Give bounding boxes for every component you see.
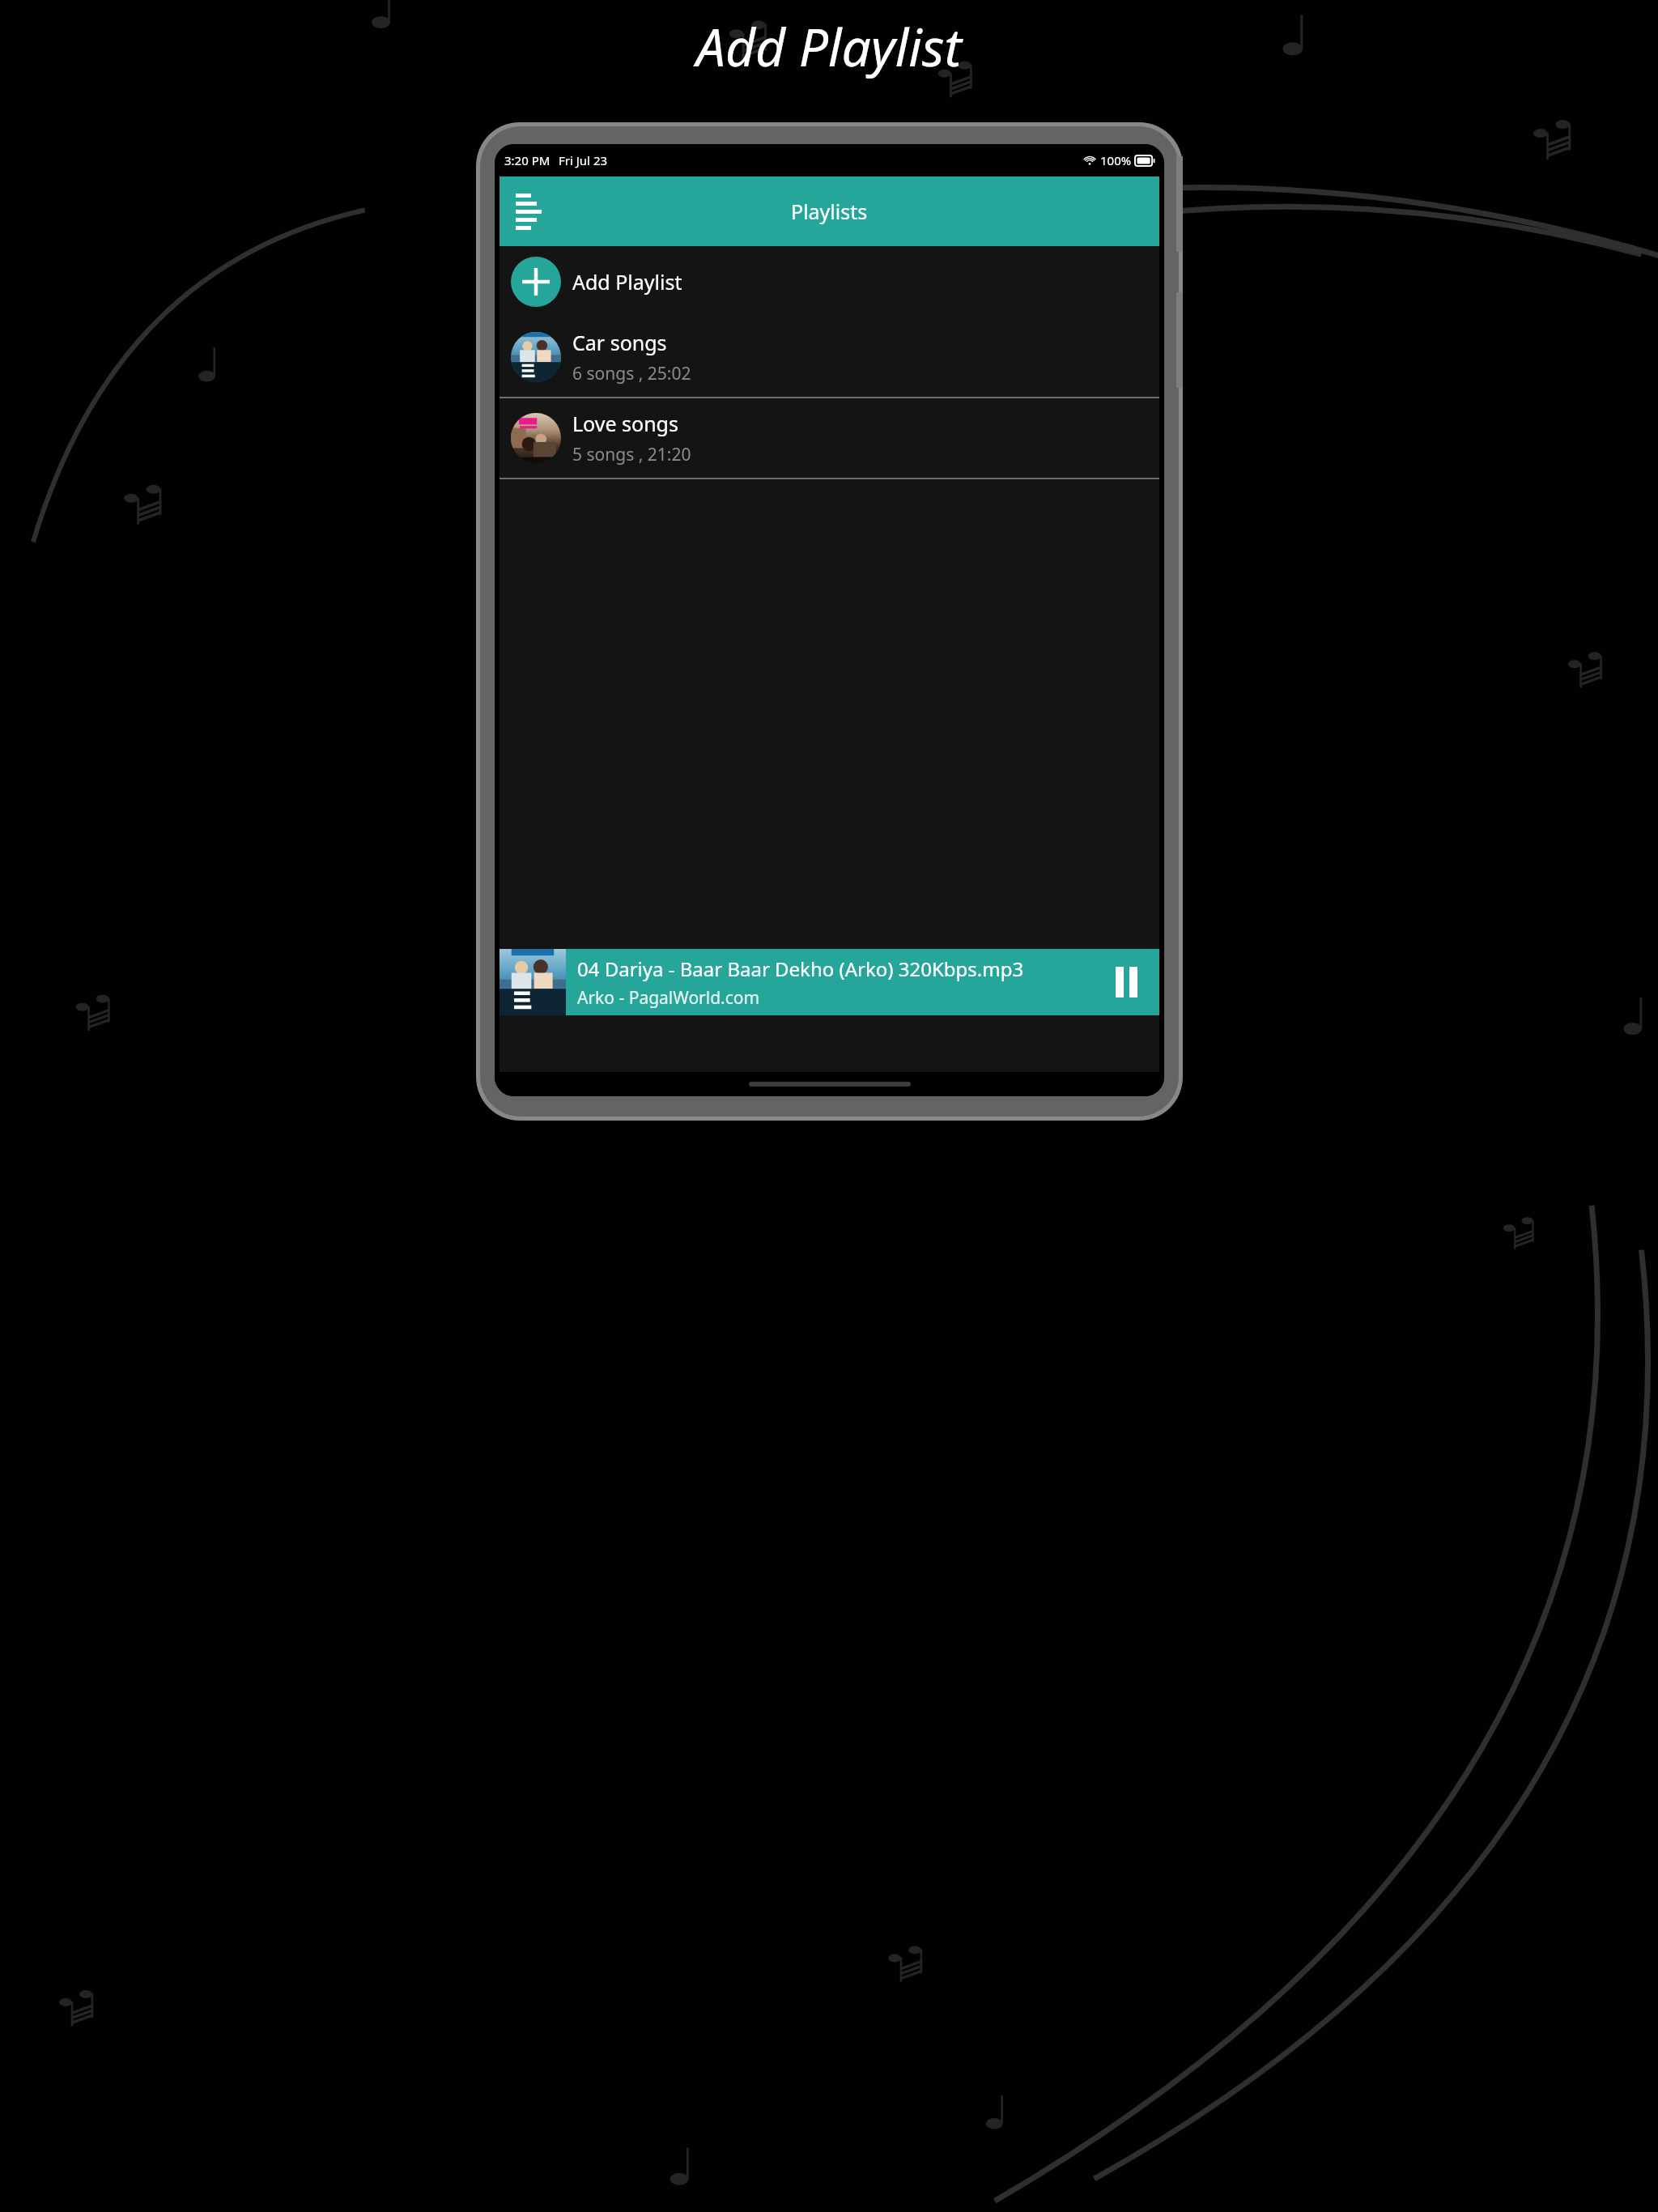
staticText: Car songs xyxy=(572,329,667,356)
staticText: Playlists xyxy=(791,198,868,225)
staticText: Love songs xyxy=(572,410,678,437)
staticText: 04 Dariya - Baar Baar Dekho (Arko) 320Kb… xyxy=(577,955,1024,982)
staticText: 6 songs , 25:02 xyxy=(572,362,691,385)
staticText: 3:20 PM xyxy=(504,152,551,168)
button[interactable]: Open navigation menu xyxy=(500,177,1159,246)
button[interactable]: Pause xyxy=(1093,949,1159,1015)
staticText: Add Playlist xyxy=(572,268,682,296)
button[interactable]: Love songs xyxy=(500,398,1159,478)
button[interactable]: Open navigation menu xyxy=(516,194,542,230)
staticText: 5 songs , 21:20 xyxy=(572,443,691,466)
staticText: Fri Jul 23 xyxy=(559,152,608,168)
button[interactable]: Car songs xyxy=(500,317,1159,397)
button[interactable]: 04 Dariya - Baar Baar Dekho (Arko) 320Kb… xyxy=(500,949,1159,1015)
button[interactable]: Add Playlist xyxy=(500,246,1159,317)
staticText: Arko - PagalWorld.com xyxy=(577,986,760,1010)
staticText: 100% xyxy=(1100,152,1132,168)
staticText: Add Playlist xyxy=(696,11,962,82)
